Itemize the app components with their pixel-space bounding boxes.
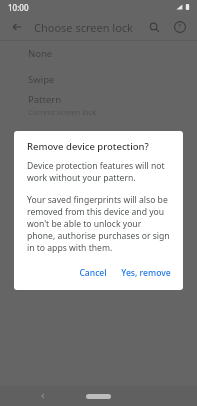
button[interactable]: Cancel [73, 262, 113, 284]
staticText: Cancel [79, 267, 107, 279]
staticText: Choose screen lock [34, 20, 133, 35]
staticText: ? [178, 22, 182, 32]
staticText: Swipe [28, 73, 55, 86]
button[interactable]: Yes, remove [115, 262, 177, 284]
button[interactable]: Back [6, 16, 28, 38]
button[interactable]: Home [86, 394, 111, 399]
staticText: 10:00 [8, 2, 29, 13]
button[interactable]: Back [34, 387, 52, 405]
button[interactable]: Pattern [0, 92, 197, 118]
staticText: Yes, remove [121, 267, 171, 279]
staticText: Device protection features will not work… [27, 160, 171, 184]
staticText: Current screen lock [28, 107, 97, 117]
staticText: Pattern [28, 93, 62, 106]
button[interactable]: Help [169, 16, 191, 38]
staticText: None [28, 47, 53, 60]
button[interactable]: Search [143, 16, 165, 38]
staticText: Remove device protection? [27, 140, 149, 153]
staticText: Your saved fingerprints will also be rem… [27, 194, 171, 254]
